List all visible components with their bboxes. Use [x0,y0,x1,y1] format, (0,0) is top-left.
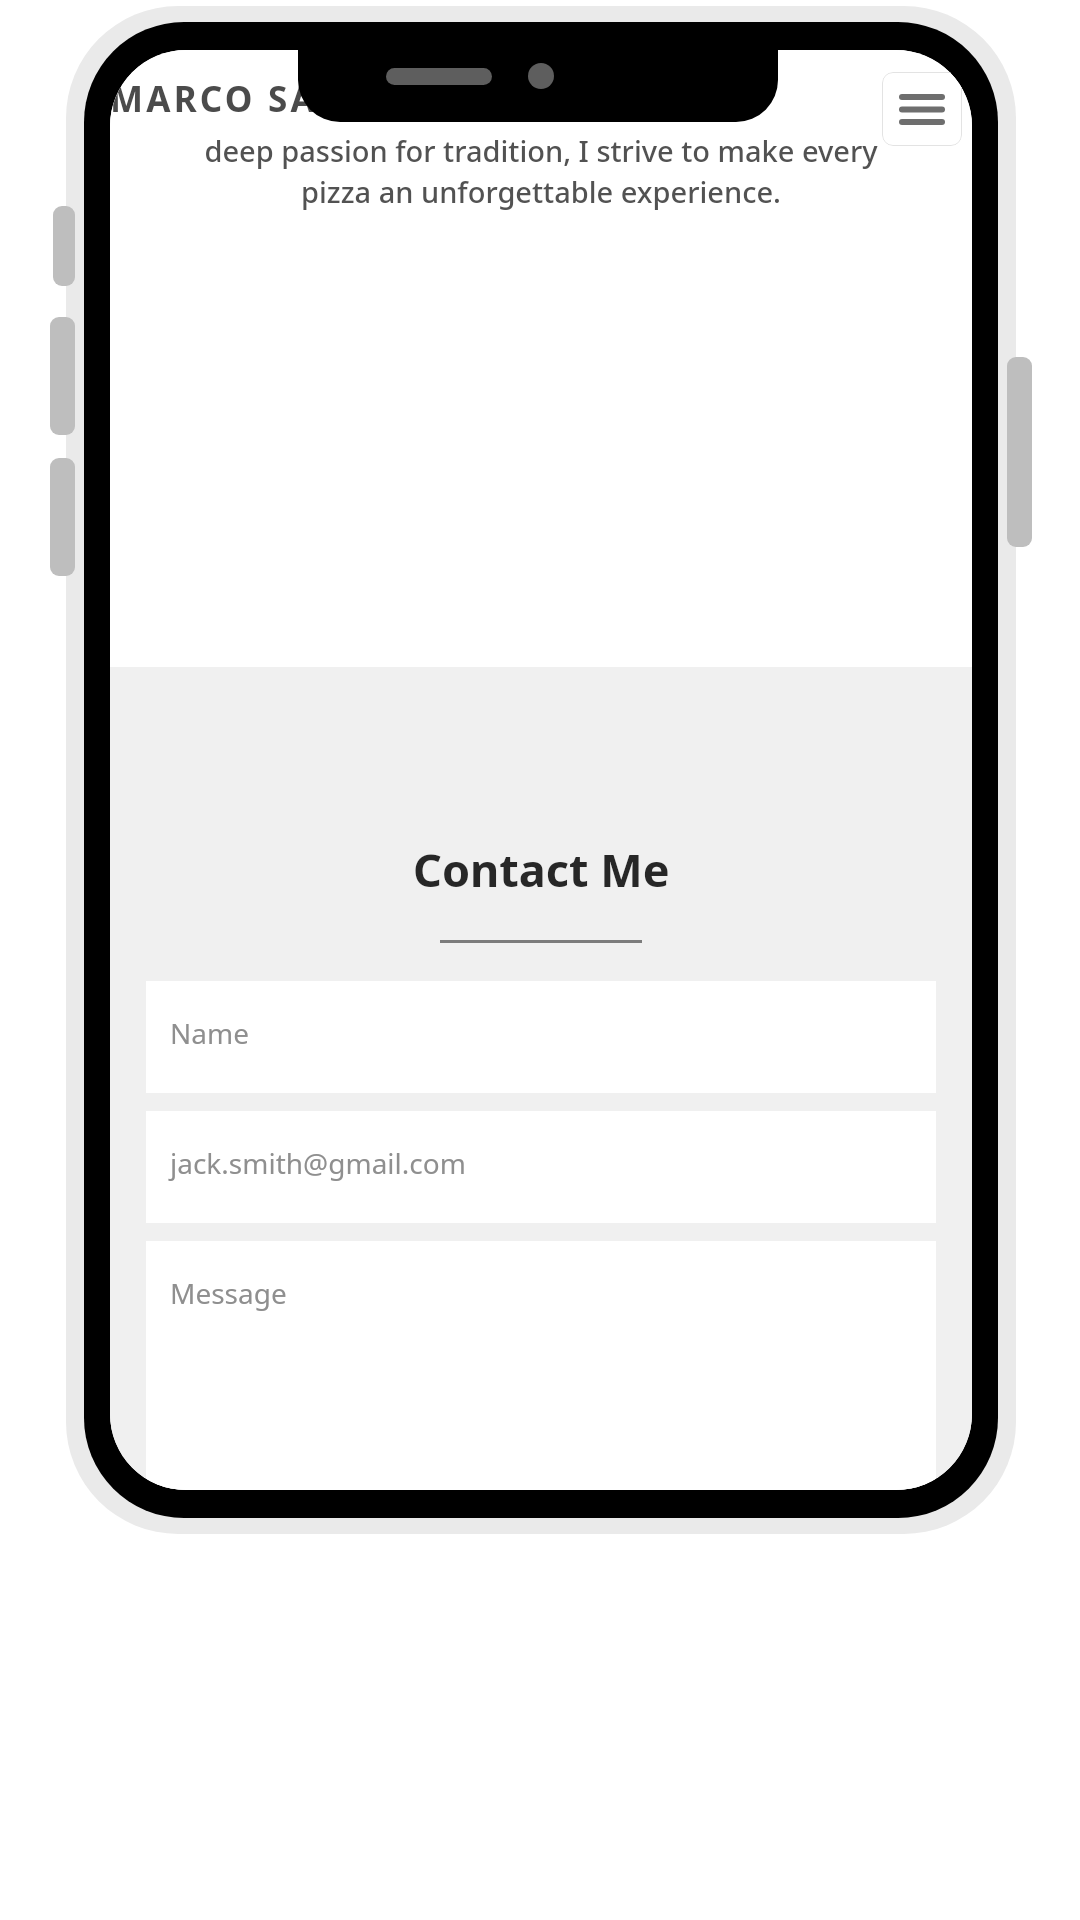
staticText: deep passion for tradition, I strive to … [114,131,968,212]
button[interactable]: Name [146,981,936,1093]
staticText: Contact Me [413,839,670,900]
button[interactable]: Message [146,1241,936,1490]
button[interactable]: Open navigation menu [882,72,962,146]
staticText: Name [170,1014,249,1052]
button[interactable]: jack.smith@gmail.com [146,1111,936,1223]
staticText: Message [170,1274,287,1312]
staticText: jack.smith@gmail.com [170,1144,466,1182]
button[interactable]: MARCO SAIELLO [110,75,434,123]
